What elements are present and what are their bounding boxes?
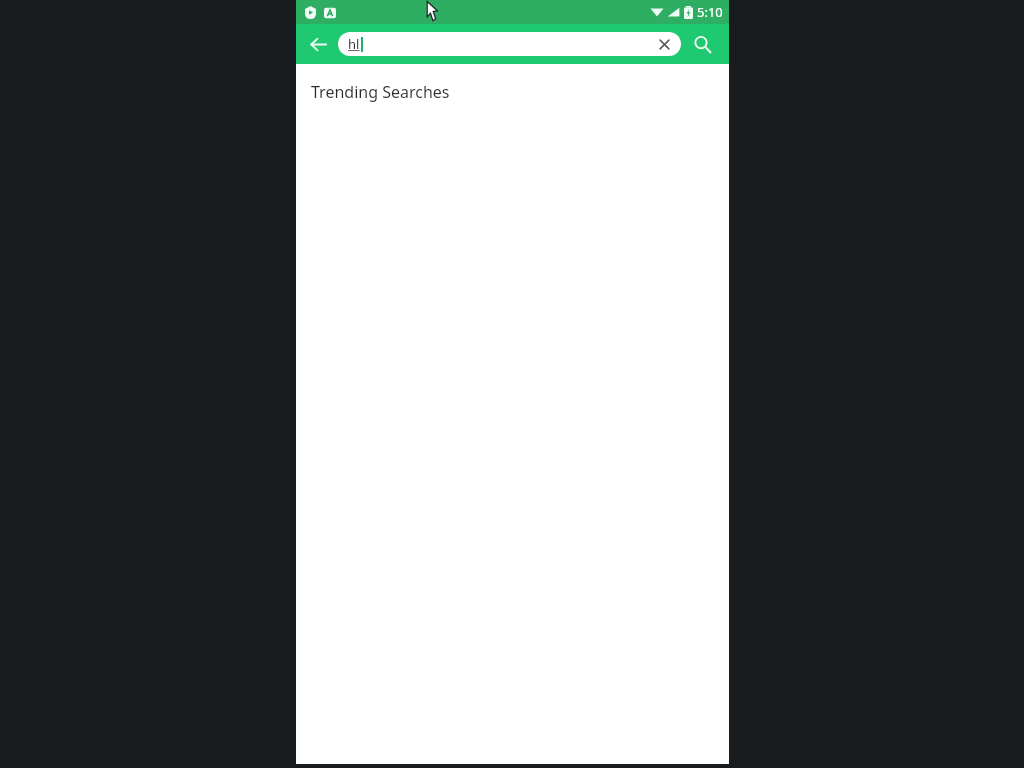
button[interactable]: Clear query <box>654 34 674 54</box>
button[interactable]: hl <box>338 32 681 56</box>
button[interactable]: Back <box>304 30 332 58</box>
staticText: hl <box>348 35 360 53</box>
staticText: Trending Searches <box>311 81 450 103</box>
staticText: 5:10 <box>697 3 723 21</box>
button[interactable]: Search <box>687 29 717 59</box>
